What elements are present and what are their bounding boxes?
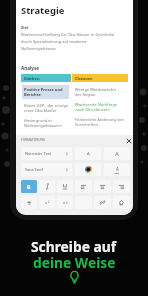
staticText: A (116, 166, 119, 172)
staticText: Positive Presse und Berichte (24, 87, 63, 97)
staticText: Hintergrund in Nullenergiehäusern. (24, 118, 63, 128)
button[interactable] (113, 180, 130, 193)
staticText: Schreibe auf (31, 237, 117, 256)
button[interactable] (57, 180, 73, 193)
staticText: Förderliche Änderung von Vorschriften (75, 117, 124, 127)
staticText: Wenige Wettbewerb'n der Region (75, 87, 117, 97)
button[interactable] (75, 180, 92, 193)
staticText: Sans Serif (25, 167, 43, 172)
button[interactable]: Close formatting (124, 136, 133, 145)
button[interactable] (113, 196, 130, 209)
button[interactable] (39, 180, 55, 193)
button[interactable]: A (75, 147, 101, 160)
button[interactable]: B (21, 180, 37, 193)
staticText: Wachsende Nachfrage nach Öko-Häusern (75, 102, 118, 112)
staticText: FORMATIERUNG (21, 138, 46, 142)
staticText: Normaler Text (25, 151, 52, 156)
button[interactable]: A (104, 163, 130, 176)
button[interactable] (75, 163, 101, 176)
staticText: Chancen (75, 76, 93, 81)
staticText: deine Weise (33, 253, 116, 272)
button[interactable]: x (39, 196, 55, 209)
staticText: Markenerschließung für Öko-Häuser in Grü… (21, 32, 115, 51)
staticText: Strategie (21, 4, 65, 17)
staticText: Analyse (21, 65, 39, 71)
staticText: x (45, 200, 48, 205)
button[interactable]: A (104, 147, 130, 160)
staticText: x (63, 200, 66, 205)
button[interactable]: S (21, 196, 37, 209)
staticText: 2 (48, 200, 50, 204)
button[interactable]: x (57, 196, 73, 209)
staticText: 2 (66, 201, 68, 205)
button[interactable] (94, 180, 111, 193)
staticText: B (27, 183, 31, 190)
staticText: Stärken (24, 76, 40, 81)
button[interactable] (94, 196, 111, 209)
staticText: A (87, 151, 90, 157)
button[interactable]: Sans Serif (21, 163, 72, 176)
staticText: A (115, 150, 119, 158)
staticText: Klares USP - der einzige reine Öko-Makle… (24, 103, 69, 113)
button[interactable]: Normaler Text (21, 147, 72, 160)
staticText: Ziel (21, 25, 29, 30)
other: Idea (70, 271, 79, 284)
staticText: S (28, 200, 31, 205)
